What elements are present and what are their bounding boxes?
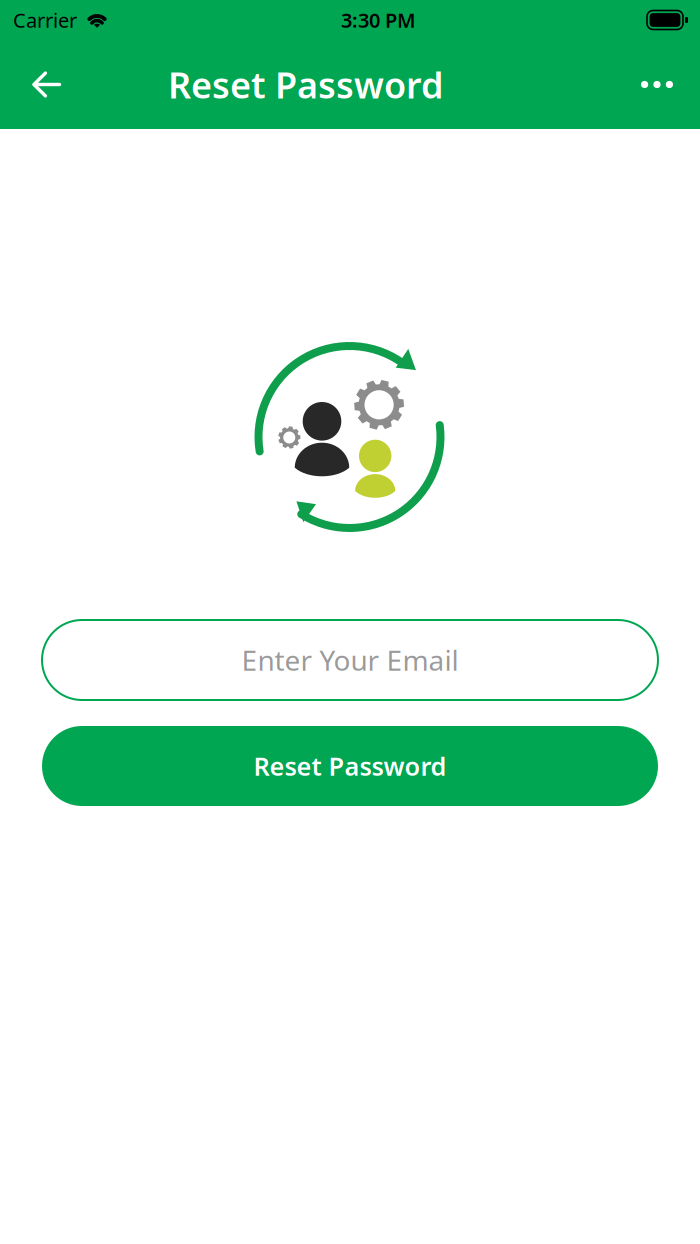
staticText: Enter Your Email bbox=[241, 641, 458, 679]
button[interactable]: Back bbox=[16, 53, 78, 115]
button[interactable]: Reset Password bbox=[42, 726, 658, 806]
button[interactable]: More options bbox=[626, 53, 688, 115]
staticText: Reset Password bbox=[253, 749, 446, 783]
staticText: Carrier bbox=[13, 7, 77, 33]
staticText: Reset Password bbox=[168, 61, 444, 108]
staticText: 3:30 PM bbox=[341, 7, 416, 33]
